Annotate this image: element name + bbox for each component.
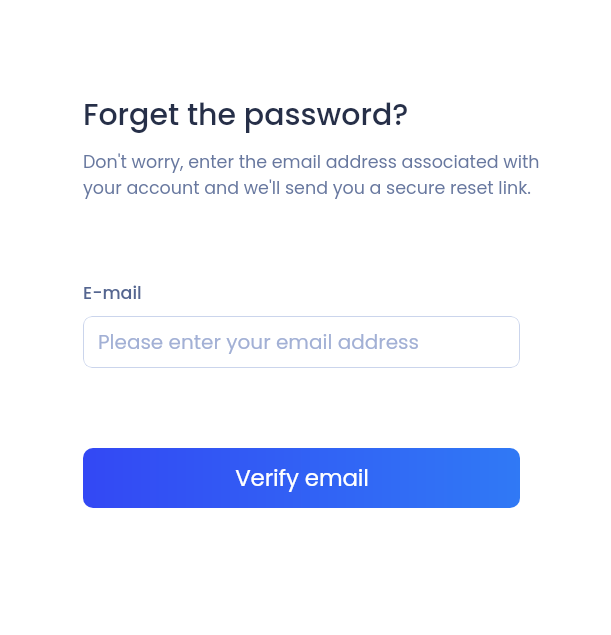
staticText: Please enter your email address (98, 328, 419, 356)
staticText: Don't worry, enter the email address ass… (83, 150, 545, 201)
button[interactable]: Verify email (83, 448, 520, 508)
staticText: Verify email (235, 462, 369, 494)
button[interactable]: Please enter your email address (83, 316, 520, 368)
staticText: Forget the password? (83, 94, 409, 136)
staticText: E-mail (83, 281, 142, 306)
